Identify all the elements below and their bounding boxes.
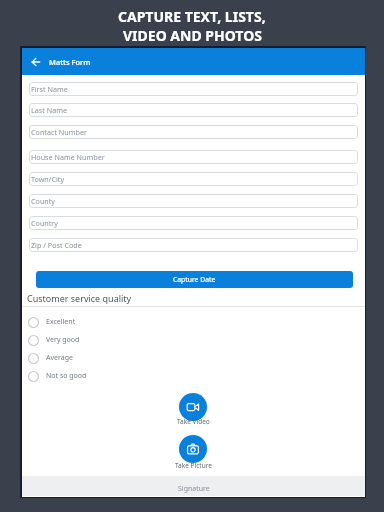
button[interactable]: Average [28, 349, 158, 367]
staticText: Last Name [31, 105, 67, 115]
staticText: Excellent [46, 317, 76, 327]
staticText: Average [46, 353, 73, 363]
staticText: County [31, 196, 56, 206]
button[interactable]: Capture Date [36, 271, 353, 288]
staticText: First Name [31, 84, 68, 94]
button[interactable]: First Name [29, 82, 358, 96]
button[interactable]: Country [29, 216, 358, 230]
button[interactable]: Town/City [29, 172, 358, 186]
button[interactable]: Very good [28, 331, 158, 349]
button[interactable]: Signature [22, 476, 365, 496]
button[interactable]: County [29, 194, 358, 208]
staticText: Contact Number [31, 127, 87, 137]
button[interactable]: Last Name [29, 103, 358, 117]
staticText: Town/City [31, 174, 65, 184]
staticText: Take Picture [175, 461, 212, 470]
button[interactable]: Zip / Post Code [29, 238, 358, 252]
button[interactable] [22, 48, 49, 75]
staticText: Country [31, 218, 59, 228]
button[interactable]: Excellent [28, 313, 158, 331]
staticText: Not so good [46, 371, 87, 381]
staticText: Customer service quality [27, 292, 132, 304]
button[interactable] [179, 435, 207, 463]
staticText: Capture Date [173, 275, 216, 284]
staticText: Signature [178, 484, 210, 494]
button[interactable]: Not so good [28, 367, 158, 385]
button[interactable]: House Name Number [29, 150, 358, 164]
staticText: House Name Number [31, 152, 105, 162]
staticText: Zip / Post Code [31, 240, 82, 250]
staticText: Matts Form [49, 57, 91, 67]
staticText: Take Video [177, 417, 210, 426]
staticText: Very good [46, 335, 80, 345]
button[interactable] [179, 393, 207, 421]
staticText: VIDEO AND PHOTOS [123, 26, 262, 45]
button[interactable]: Contact Number [29, 125, 358, 139]
staticText: CAPTURE TEXT, LISTS, [118, 7, 266, 26]
